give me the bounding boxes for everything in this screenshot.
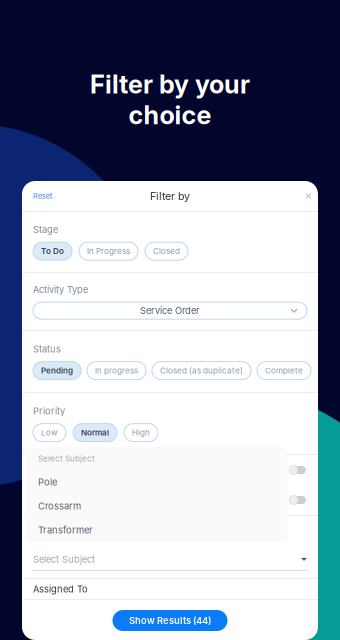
button[interactable]: Pole [26, 470, 287, 494]
staticText: Reset [33, 191, 52, 200]
staticText: Pole [38, 476, 57, 488]
button[interactable]: Complete [257, 362, 311, 380]
button[interactable]: To Do [33, 242, 72, 260]
staticText: Status [33, 343, 61, 355]
staticText: Filter by your [90, 69, 250, 100]
button[interactable]: Show Results (44) [112, 610, 227, 631]
button[interactable]: Closed (as duplicate) [152, 362, 251, 380]
button[interactable]: Closed [145, 242, 188, 260]
staticText: Closed [153, 246, 180, 256]
button[interactable]: Reset [28, 185, 57, 206]
button[interactable]: Close [300, 187, 317, 204]
staticText: Complete [265, 366, 303, 375]
staticText: High [132, 428, 150, 437]
button[interactable]: High [124, 424, 158, 442]
staticText: Closed (as duplicate) [160, 366, 243, 375]
staticText: Priority [33, 405, 65, 417]
button[interactable]: Select Subject [22, 516, 318, 578]
staticText: To Do [41, 246, 64, 256]
staticText: Select Subject [38, 454, 95, 463]
button[interactable]: Low [33, 424, 66, 442]
button[interactable]: In Progress [79, 242, 138, 260]
button[interactable]: Transformer [26, 518, 287, 542]
button[interactable]: Crossarm [26, 494, 287, 518]
staticText: Low [41, 428, 58, 437]
staticText: In Progress [87, 246, 130, 256]
button[interactable]: Notify Me [22, 485, 318, 515]
button[interactable]: Include Closed [22, 455, 318, 485]
staticText: Select Subject [33, 554, 95, 565]
staticText: Normal [81, 428, 109, 437]
staticText: In progress [95, 366, 138, 375]
staticText: Assigned To [33, 583, 88, 595]
button[interactable]: Normal [73, 424, 117, 442]
staticText: Stage [33, 224, 58, 235]
staticText: Service Order [140, 305, 200, 316]
staticText: Activity Type [33, 284, 88, 295]
staticText: Pending [41, 366, 73, 375]
staticText: Show Results (44) [129, 615, 211, 626]
button[interactable]: In progress [87, 362, 146, 380]
staticText: choice [128, 100, 211, 130]
staticText: Crossarm [38, 500, 81, 512]
staticText: Filter by [150, 189, 190, 202]
staticText: Notify Me [33, 494, 75, 506]
button[interactable]: Service Order [33, 302, 307, 319]
staticText: Transformer [38, 524, 93, 536]
button[interactable]: Pending [33, 362, 81, 380]
